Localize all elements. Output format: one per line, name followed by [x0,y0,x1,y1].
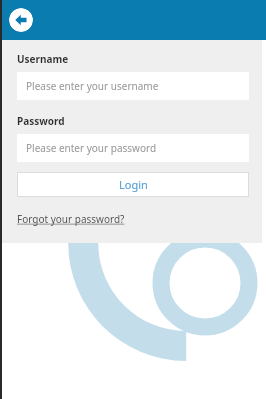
button[interactable]: Back [9,8,33,32]
staticText: Password [17,114,65,128]
button[interactable]: Please enter your password [17,134,249,162]
staticText: Username [17,52,69,66]
staticText: Please enter your username [26,79,159,93]
button[interactable]: Forgot your password? [17,212,125,226]
staticText: Forgot your password? [17,212,125,226]
button[interactable]: Login [17,172,249,197]
button[interactable]: Please enter your username [17,72,249,100]
staticText: Please enter your password [26,141,157,155]
staticText: Login [119,177,148,192]
